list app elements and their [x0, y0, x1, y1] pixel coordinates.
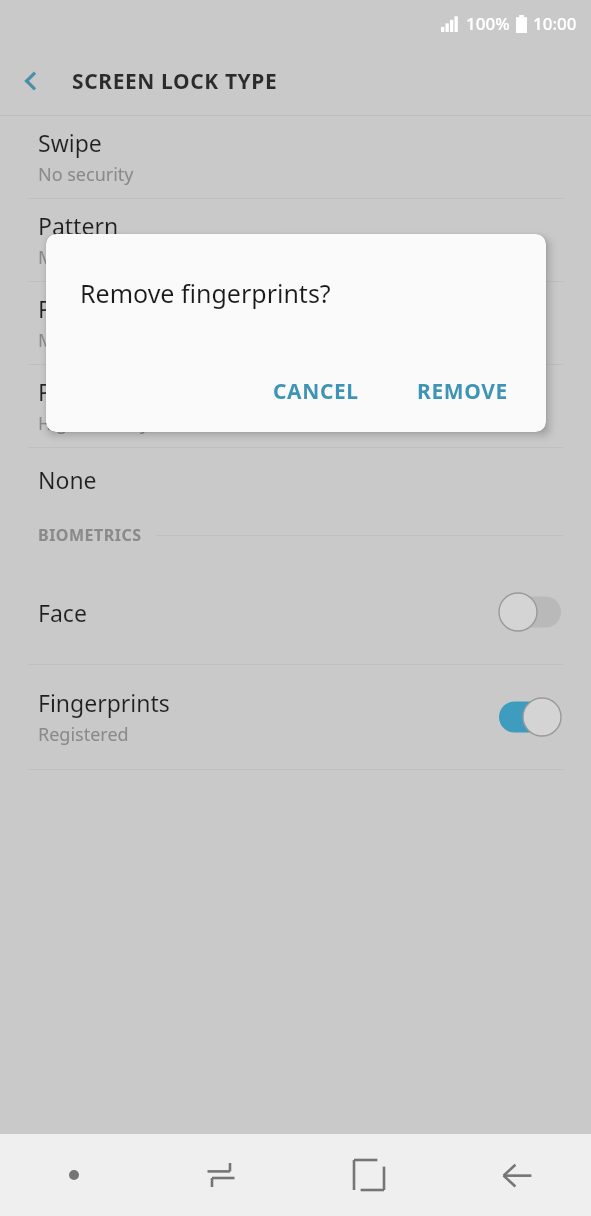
staticText: CANCEL — [273, 377, 359, 406]
button[interactable]: Back — [0, 50, 62, 112]
staticText: Swipe — [38, 127, 102, 158]
button[interactable]: Fingerprints — [0, 665, 591, 769]
button[interactable]: Face — [0, 560, 591, 664]
button[interactable]: PIN — [0, 282, 591, 364]
button[interactable]: Fingerprints on — [499, 698, 561, 736]
staticText: SCREEN LOCK TYPE — [72, 67, 278, 96]
staticText: Fingerprints — [38, 687, 170, 718]
staticText: BIOMETRICS — [38, 524, 142, 546]
button[interactable]: Home — [295, 1134, 443, 1216]
staticText: Face — [38, 597, 87, 628]
button[interactable]: REMOVE — [399, 365, 526, 418]
button[interactable]: None — [0, 448, 591, 510]
staticText: 10:00 — [533, 12, 577, 35]
button[interactable]: Back — [443, 1134, 591, 1216]
staticText: Password — [38, 376, 143, 407]
button[interactable]: Face off — [499, 593, 561, 631]
staticText: Medium to high security — [38, 328, 244, 353]
button[interactable]: CANCEL — [255, 365, 377, 418]
staticText: REMOVE — [417, 377, 508, 406]
staticText: PIN — [38, 293, 78, 324]
staticText: High security — [38, 411, 150, 436]
staticText: Medium security, Current lock type — [38, 245, 333, 270]
button[interactable]: Swipe — [0, 116, 591, 198]
button[interactable]: Recents — [147, 1134, 295, 1216]
staticText: Remove fingerprints? — [80, 276, 331, 310]
staticText: None — [38, 464, 97, 495]
staticText: Pattern — [38, 210, 119, 241]
button[interactable]: Menu indicator — [0, 1134, 147, 1216]
staticText: No security — [38, 162, 134, 187]
button[interactable]: Password — [0, 365, 591, 447]
button[interactable]: Pattern — [0, 199, 591, 281]
staticText: 100% — [466, 12, 510, 35]
staticText: Registered — [38, 722, 129, 747]
